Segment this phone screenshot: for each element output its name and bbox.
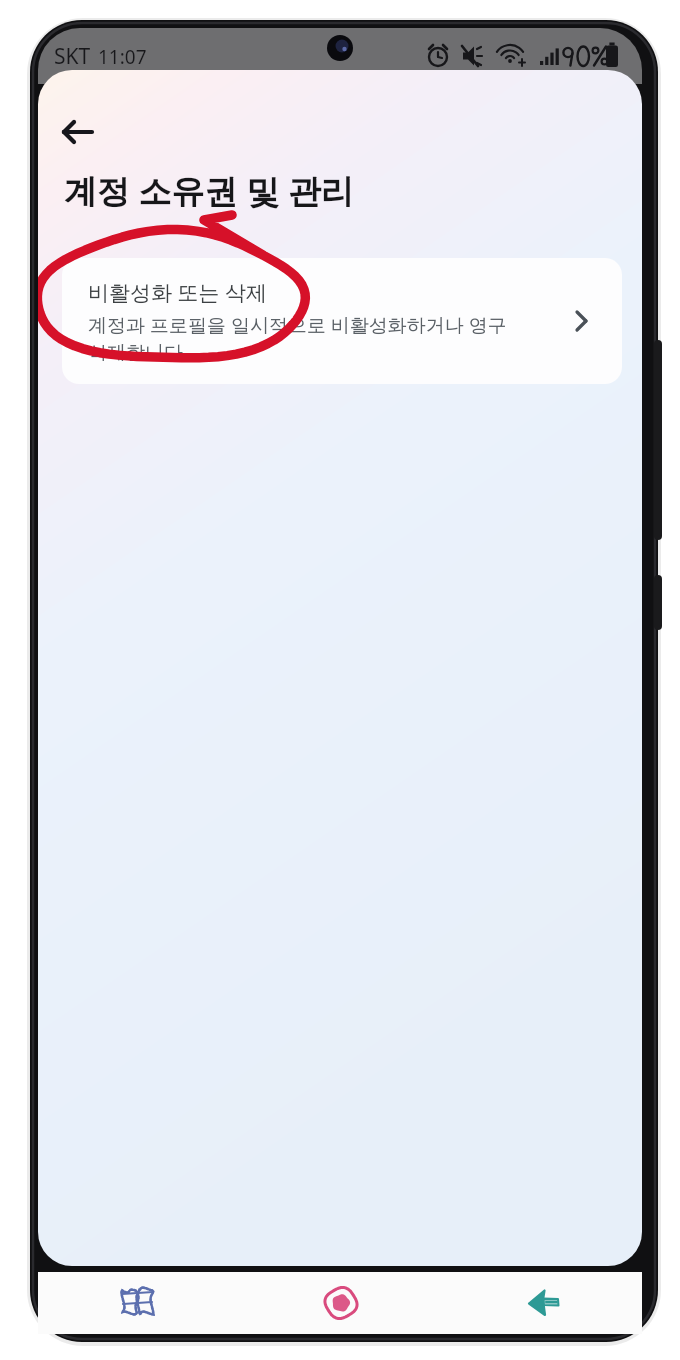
button[interactable]: 비활성화 또는 삭제 xyxy=(62,258,622,384)
staticText: 비활성화 또는 삭제 xyxy=(88,278,267,307)
button[interactable]: Back xyxy=(441,1272,642,1334)
staticText: 11:07 xyxy=(98,44,147,70)
staticText: SKT xyxy=(54,42,91,71)
button[interactable]: Recent apps xyxy=(38,1272,240,1334)
staticText: 계정과 프로필을 일시적으로 비활성화하거나 영구 삭제합니다 xyxy=(88,312,507,365)
staticText: 계정 소유권 및 관리 xyxy=(64,168,354,213)
button[interactable]: Home xyxy=(240,1272,441,1334)
button[interactable]: Back xyxy=(52,106,104,158)
